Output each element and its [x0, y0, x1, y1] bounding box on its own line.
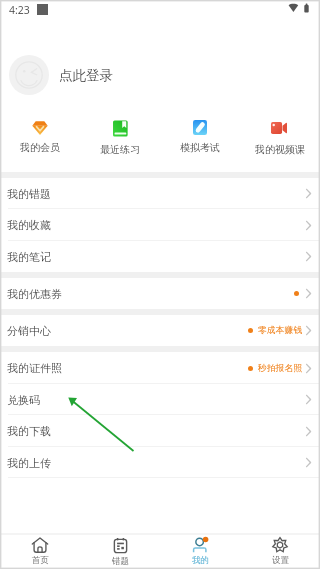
button[interactable]: 我的收藏 [0, 209, 320, 241]
staticText: 我的优惠券 [7, 287, 62, 301]
button[interactable]: 点此登录 [0, 55, 320, 95]
staticText: 最近练习 [100, 143, 140, 156]
button[interactable]: 我的优惠券 [0, 278, 320, 309]
button[interactable]: 我的错题 [0, 178, 320, 209]
staticText: 我的错题 [7, 187, 51, 201]
staticText: 首页 [32, 555, 49, 566]
button[interactable]: 我的上传 [0, 447, 320, 478]
staticText: 我的证件照 [7, 361, 62, 375]
staticText: 我的笔记 [7, 250, 51, 264]
staticText: 秒拍报名照 [258, 363, 302, 374]
staticText: 分销中心 [7, 324, 51, 338]
button[interactable]: 最近练习 [80, 108, 160, 172]
button[interactable]: 我的证件照 [0, 352, 320, 384]
button[interactable]: 首页 [0, 535, 80, 569]
staticText: 我的会员 [20, 141, 60, 154]
button[interactable]: 错题 [80, 535, 160, 569]
staticText: 我的收藏 [7, 218, 51, 232]
button[interactable]: 分销中心 [0, 315, 320, 346]
staticText: 设置 [272, 555, 289, 566]
staticText: 模拟考试 [180, 141, 220, 154]
button[interactable]: 我的 [160, 535, 240, 569]
staticText: 我的 [192, 555, 209, 566]
button[interactable]: 设置 [240, 535, 320, 569]
staticText: 兑换码 [7, 393, 40, 407]
staticText: 我的上传 [7, 456, 51, 470]
button[interactable]: 兑换码 [0, 384, 320, 415]
staticText: 零成本赚钱 [258, 325, 302, 336]
staticText: 点此登录 [59, 67, 113, 84]
button[interactable]: 我的笔记 [0, 241, 320, 272]
staticText: 我的视频课 [255, 143, 305, 156]
button[interactable]: 我的视频课 [240, 108, 320, 172]
staticText: 我的下载 [7, 424, 51, 438]
button[interactable]: 我的会员 [0, 108, 80, 172]
staticText: 错题 [112, 556, 129, 567]
button[interactable]: 模拟考试 [160, 108, 240, 172]
button[interactable]: 我的下载 [0, 415, 320, 447]
staticText: 4:23 [9, 3, 30, 17]
